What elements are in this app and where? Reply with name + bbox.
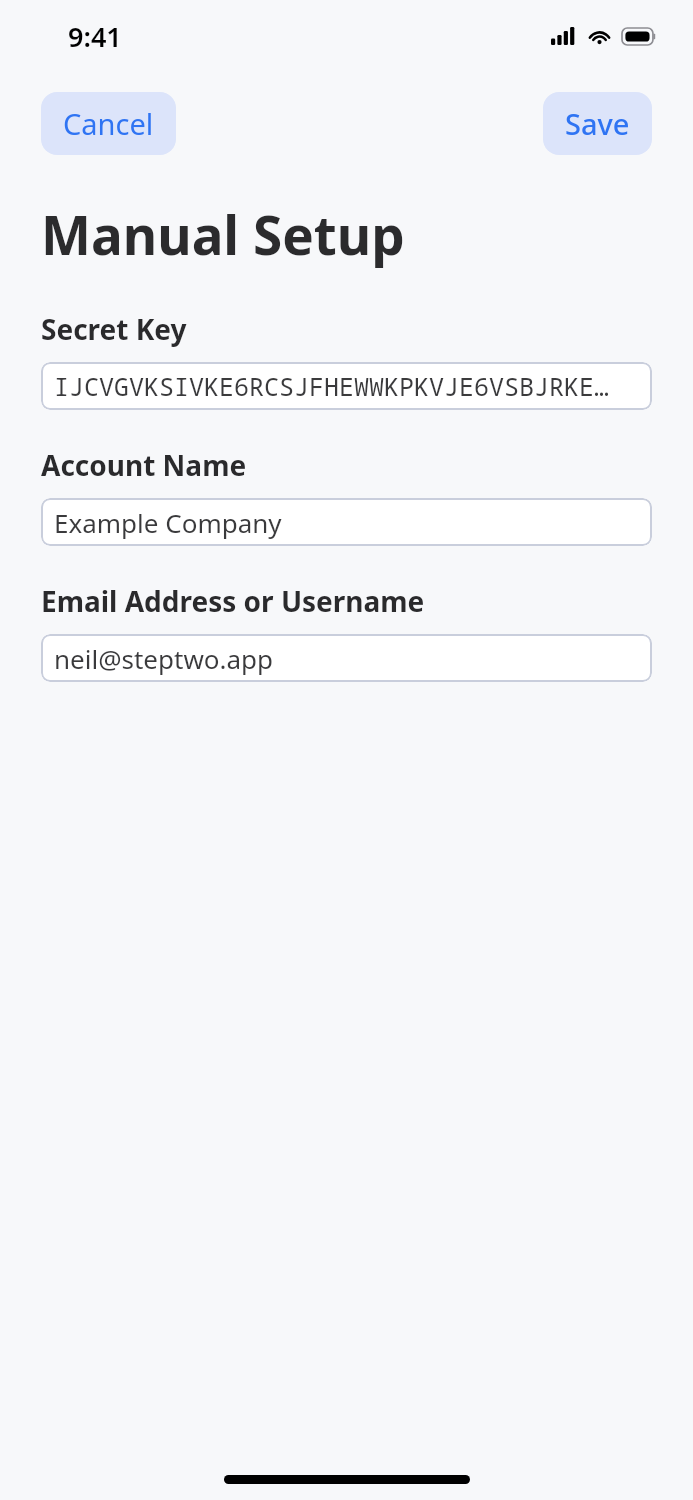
button[interactable]: neil@steptwo.app — [41, 634, 652, 682]
staticText: Save — [565, 104, 630, 143]
staticText: Cancel — [63, 104, 154, 143]
staticText: 9:41 — [68, 18, 122, 55]
button[interactable]: IJCVGVKSIVKE6RCSJFHEWWKPKVJE6VSBJRKE… — [41, 362, 652, 410]
staticText: Email Address or Username — [41, 582, 425, 620]
staticText: Secret Key — [41, 310, 187, 348]
staticText: Account Name — [41, 446, 247, 484]
staticText: IJCVGVKSIVKE6RCSJFHEWWKPKVJE6VSBJRKE… — [54, 369, 610, 403]
button[interactable]: Example Company — [41, 498, 652, 546]
button[interactable]: Cancel — [41, 92, 176, 155]
button[interactable]: Save — [543, 92, 652, 155]
staticText: Example Company — [54, 505, 282, 540]
staticText: Manual Setup — [41, 198, 405, 270]
staticText: neil@steptwo.app — [54, 641, 274, 676]
